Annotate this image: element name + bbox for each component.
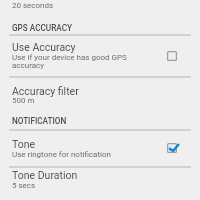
staticText: Use ringtone for notification: [12, 150, 111, 159]
staticText: Tone: [12, 138, 36, 150]
staticText: Tone Duration: [12, 169, 78, 181]
button[interactable]: [0, 36, 200, 76]
staticText: 20 seconds: [12, 1, 54, 10]
staticText: NOTIFICATION: [12, 116, 67, 126]
staticText: 500 m: [12, 96, 35, 105]
button[interactable]: [0, 168, 200, 200]
staticText: Accuracy filter: [12, 85, 79, 97]
staticText: Use Accuracy: [12, 41, 76, 53]
staticText: Use if your device has good GPS: [12, 53, 127, 62]
button[interactable]: [0, 131, 200, 166]
button[interactable]: [0, 78, 200, 108]
staticText: accuracy: [12, 61, 45, 70]
staticText: GPS ACCURACY: [12, 23, 73, 33]
staticText: 5 secs: [12, 181, 36, 190]
button[interactable]: Tone: [160, 136, 184, 160]
button[interactable]: Use Accuracy: [160, 44, 184, 68]
